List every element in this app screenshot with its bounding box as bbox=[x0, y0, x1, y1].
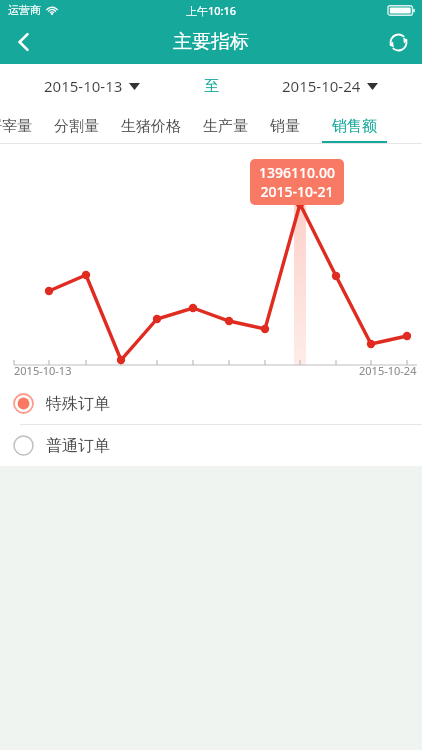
button[interactable]: 普通订单 bbox=[0, 425, 422, 466]
staticText: 屠宰量 bbox=[0, 117, 32, 136]
button[interactable]: 生猪价格 bbox=[110, 108, 192, 144]
staticText: 2015-10-24 bbox=[359, 363, 417, 378]
button[interactable]: Refresh bbox=[374, 20, 422, 64]
staticText: 2015-10-13 bbox=[44, 76, 123, 96]
staticText: 2015-10-13 bbox=[14, 363, 72, 378]
staticText: 分割量 bbox=[54, 117, 99, 136]
button[interactable]: 销售额 bbox=[311, 108, 398, 144]
button[interactable]: 生产量 bbox=[192, 108, 259, 144]
staticText: 上午10:16 bbox=[186, 3, 237, 18]
button[interactable]: 屠宰量 bbox=[0, 108, 43, 144]
staticText: 销售额 bbox=[332, 117, 377, 136]
staticText: 生产量 bbox=[203, 117, 248, 136]
staticText: 1396110.00 bbox=[259, 163, 335, 182]
button[interactable]: 销量 bbox=[259, 108, 311, 144]
button[interactable]: 至 bbox=[204, 77, 219, 96]
staticText: 主要指标 bbox=[173, 30, 249, 54]
button[interactable]: 2015-10-13 bbox=[44, 76, 140, 96]
staticText: 2015-10-21 bbox=[260, 182, 334, 201]
button[interactable]: 特殊订单 bbox=[0, 383, 422, 424]
button[interactable]: Back bbox=[0, 20, 48, 64]
staticText: 销量 bbox=[270, 117, 300, 136]
staticText: 生猪价格 bbox=[121, 117, 181, 136]
staticText: 至 bbox=[204, 77, 219, 96]
staticText: 2015-10-24 bbox=[282, 76, 361, 96]
staticText: 特殊订单 bbox=[46, 394, 110, 414]
staticText: 运营商 bbox=[8, 3, 41, 17]
button[interactable]: 2015-10-24 bbox=[282, 76, 378, 96]
button[interactable]: 分割量 bbox=[43, 108, 110, 144]
staticText: 普通订单 bbox=[46, 436, 110, 456]
